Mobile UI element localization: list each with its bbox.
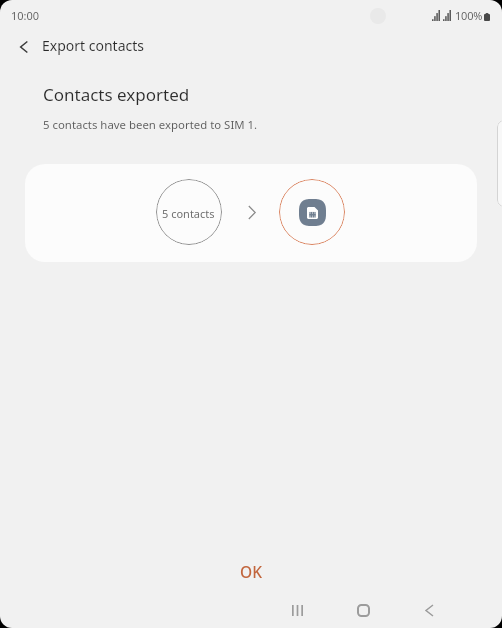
button[interactable]: Back — [7, 30, 41, 64]
button[interactable]: Recent apps — [274, 592, 320, 628]
staticText: 5 contacts have been exported to SIM 1. — [43, 117, 258, 133]
button[interactable]: Home — [340, 592, 386, 628]
staticText: Contacts exported — [43, 83, 190, 106]
button[interactable]: OK — [212, 556, 290, 587]
staticText: Export contacts — [42, 36, 144, 55]
staticText: 5 contacts — [162, 206, 215, 221]
staticText: 100% — [455, 8, 483, 23]
button[interactable]: Back — [406, 592, 452, 628]
staticText: 10:00 — [11, 8, 40, 23]
staticText: OK — [240, 561, 262, 582]
